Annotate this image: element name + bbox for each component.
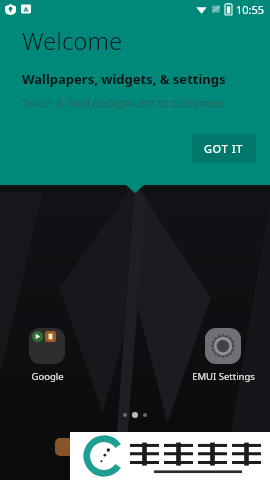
button[interactable]: Google folder	[12, 328, 82, 383]
staticText: Touch & hold background to customize	[22, 95, 224, 110]
button[interactable]	[55, 438, 73, 456]
other: EMUI Settings	[205, 328, 241, 364]
staticText: GOT IT	[204, 141, 244, 156]
button[interactable]: GOT IT	[192, 134, 256, 163]
staticText: Wallpapers, widgets, & settings	[22, 70, 226, 88]
button[interactable]: EMUI Settings	[188, 328, 258, 383]
staticText: Google	[31, 370, 64, 383]
staticText: Welcome	[22, 24, 123, 57]
staticText: EMUI Settings	[192, 370, 255, 383]
staticText: 10:55	[236, 2, 265, 17]
other: Google folder	[29, 328, 65, 364]
